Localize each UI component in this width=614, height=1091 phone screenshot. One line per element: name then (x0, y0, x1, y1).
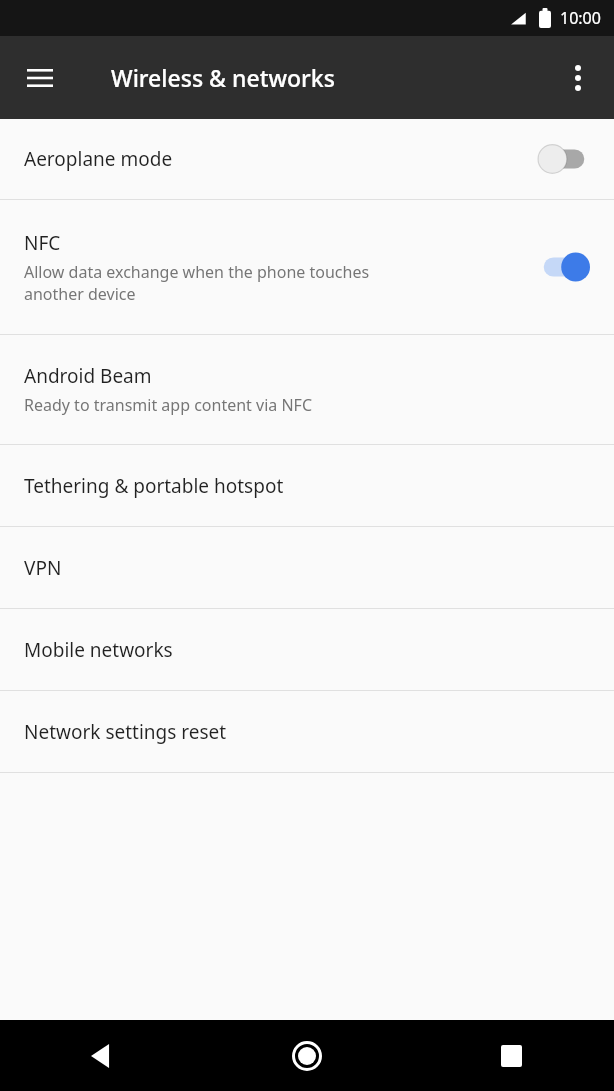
button[interactable]: Network settings reset (0, 691, 614, 772)
staticText: VPN (24, 555, 62, 581)
button[interactable]: Navigation menu (12, 50, 68, 106)
staticText: Aeroplane mode (24, 146, 173, 172)
button[interactable]: More options (550, 50, 606, 106)
button[interactable]: Aeroplane mode (0, 119, 614, 199)
button[interactable]: NFC (0, 200, 614, 334)
staticText: NFC (24, 230, 61, 256)
button[interactable]: Android Beam (0, 335, 614, 444)
staticText: Tethering & portable hotspot (24, 473, 284, 499)
button[interactable]: Back (0, 1020, 204, 1091)
button[interactable]: Tethering & portable hotspot (0, 445, 614, 526)
staticText: Mobile networks (24, 637, 173, 663)
button[interactable]: Mobile networks (0, 609, 614, 690)
button[interactable]: Home (204, 1020, 409, 1091)
staticText: Allow data exchange when the phone touch… (24, 261, 370, 305)
staticText: Android Beam (24, 363, 152, 389)
staticText: 10:00 (560, 7, 601, 29)
button[interactable]: NFC toggle (538, 249, 590, 285)
button[interactable]: VPN (0, 527, 614, 608)
staticText: Ready to transmit app content via NFC (24, 394, 313, 416)
button[interactable]: Recent apps (409, 1020, 614, 1091)
staticText: Network settings reset (24, 719, 227, 745)
staticText: Wireless & networks (111, 62, 335, 93)
button[interactable]: Aeroplane mode toggle (538, 141, 590, 177)
